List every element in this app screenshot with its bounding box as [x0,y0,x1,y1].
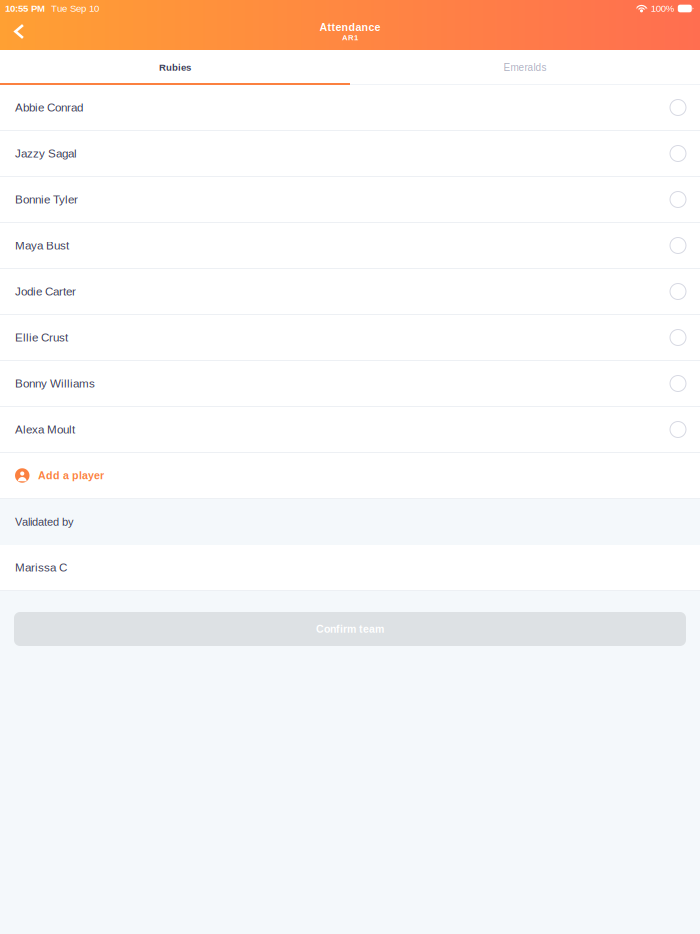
staticText: AR1 [342,33,358,42]
staticText: 100% [651,3,675,14]
staticText: Marissa C [15,561,67,574]
staticText: 10:55 PM [5,3,45,14]
staticText: Ellie Crust [15,331,68,344]
staticText: Alexa Moult [15,423,75,436]
staticText: Emeralds [503,62,546,73]
staticText: Validated by [15,516,74,528]
staticText: Bonnie Tyler [15,193,78,206]
button[interactable]: Maya Bust [0,223,700,269]
button[interactable]: Alexa Moult [0,407,700,453]
staticText: Rubies [159,62,191,73]
staticText: Attendance [319,21,380,33]
button[interactable]: Rubies [0,50,350,85]
button[interactable]: Add a player [0,453,700,499]
button[interactable]: Marissa C [0,545,700,591]
staticText: Jodie Carter [15,285,76,298]
button[interactable]: Bonnie Tyler [0,177,700,223]
staticText: Confirm team [316,623,384,635]
button[interactable]: Emeralds [350,50,700,85]
button[interactable]: Back [0,15,32,47]
button[interactable]: Jazzy Sagal [0,131,700,177]
button[interactable]: Abbie Conrad [0,85,700,131]
staticText: Bonny Williams [15,377,95,390]
button[interactable]: Ellie Crust [0,315,700,361]
staticText: Maya Bust [15,239,69,252]
staticText: Tue Sep 10 [51,3,99,14]
staticText: Jazzy Sagal [15,147,77,160]
staticText: Abbie Conrad [15,101,83,114]
button[interactable]: Jodie Carter [0,269,700,315]
button[interactable]: Bonny Williams [0,361,700,407]
staticText: Add a player [38,469,104,481]
